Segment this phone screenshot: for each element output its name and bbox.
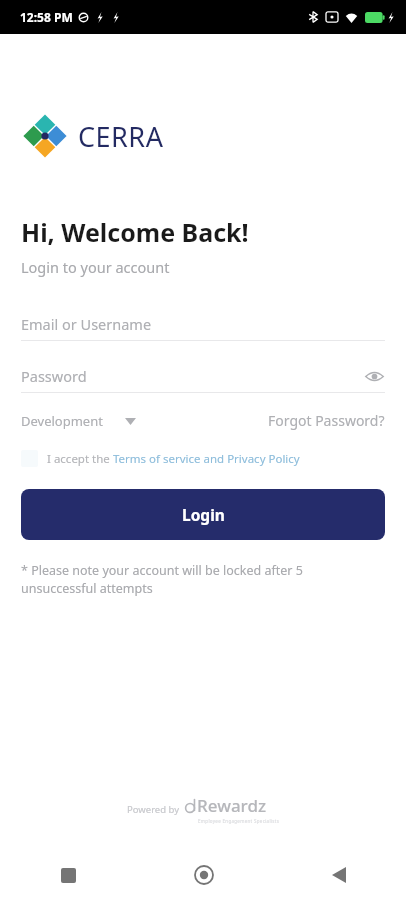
staticText: Hi, Welcome Back! (21, 215, 249, 249)
staticText: Rewardz (197, 794, 267, 817)
staticText: Development (21, 412, 103, 430)
button[interactable]: Back (271, 850, 406, 900)
staticText: Password (21, 366, 87, 386)
button[interactable]: Show password (363, 365, 385, 387)
button[interactable]: Recent apps (0, 850, 136, 900)
button[interactable]: Login (21, 489, 385, 540)
button[interactable]: Email or Username (21, 311, 385, 341)
button[interactable]: Home (136, 850, 271, 900)
staticText: I accept the (47, 451, 113, 467)
button[interactable]: Forgot Password? (268, 411, 385, 430)
staticText: * Please note your account will be locke… (21, 562, 368, 597)
staticText: Forgot Password? (268, 411, 385, 430)
staticText: Terms of service and Privacy Policy (113, 451, 300, 467)
button[interactable]: I accept the (21, 450, 406, 467)
button[interactable]: Development (21, 412, 136, 430)
button[interactable]: Password (21, 363, 385, 389)
staticText: Email or Username (21, 314, 152, 334)
staticText: Login (182, 504, 225, 525)
staticText: Powered by (127, 803, 180, 816)
staticText: 12:58 PM (20, 9, 73, 25)
staticText: Employee Engagement Specialists (198, 818, 280, 824)
staticText: Login to your account (21, 257, 170, 277)
staticText: CERRA (78, 118, 164, 155)
